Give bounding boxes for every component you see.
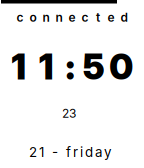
staticText: c — [16, 10, 23, 24]
staticText: 0 — [109, 46, 133, 88]
staticText: 1 — [11, 46, 26, 88]
staticText: 5 — [83, 46, 105, 88]
staticText: d — [120, 10, 127, 24]
staticText: t — [96, 10, 100, 24]
staticText: : — [65, 46, 75, 88]
staticText: n — [55, 10, 62, 24]
staticText: 21 - friday — [29, 144, 111, 160]
staticText: o — [29, 10, 36, 24]
staticText: n — [42, 10, 49, 24]
staticText: c — [81, 10, 88, 24]
staticText: 1 — [39, 46, 54, 88]
staticText: e — [68, 10, 75, 24]
staticText: e — [107, 10, 114, 24]
staticText: 23 — [62, 106, 76, 120]
